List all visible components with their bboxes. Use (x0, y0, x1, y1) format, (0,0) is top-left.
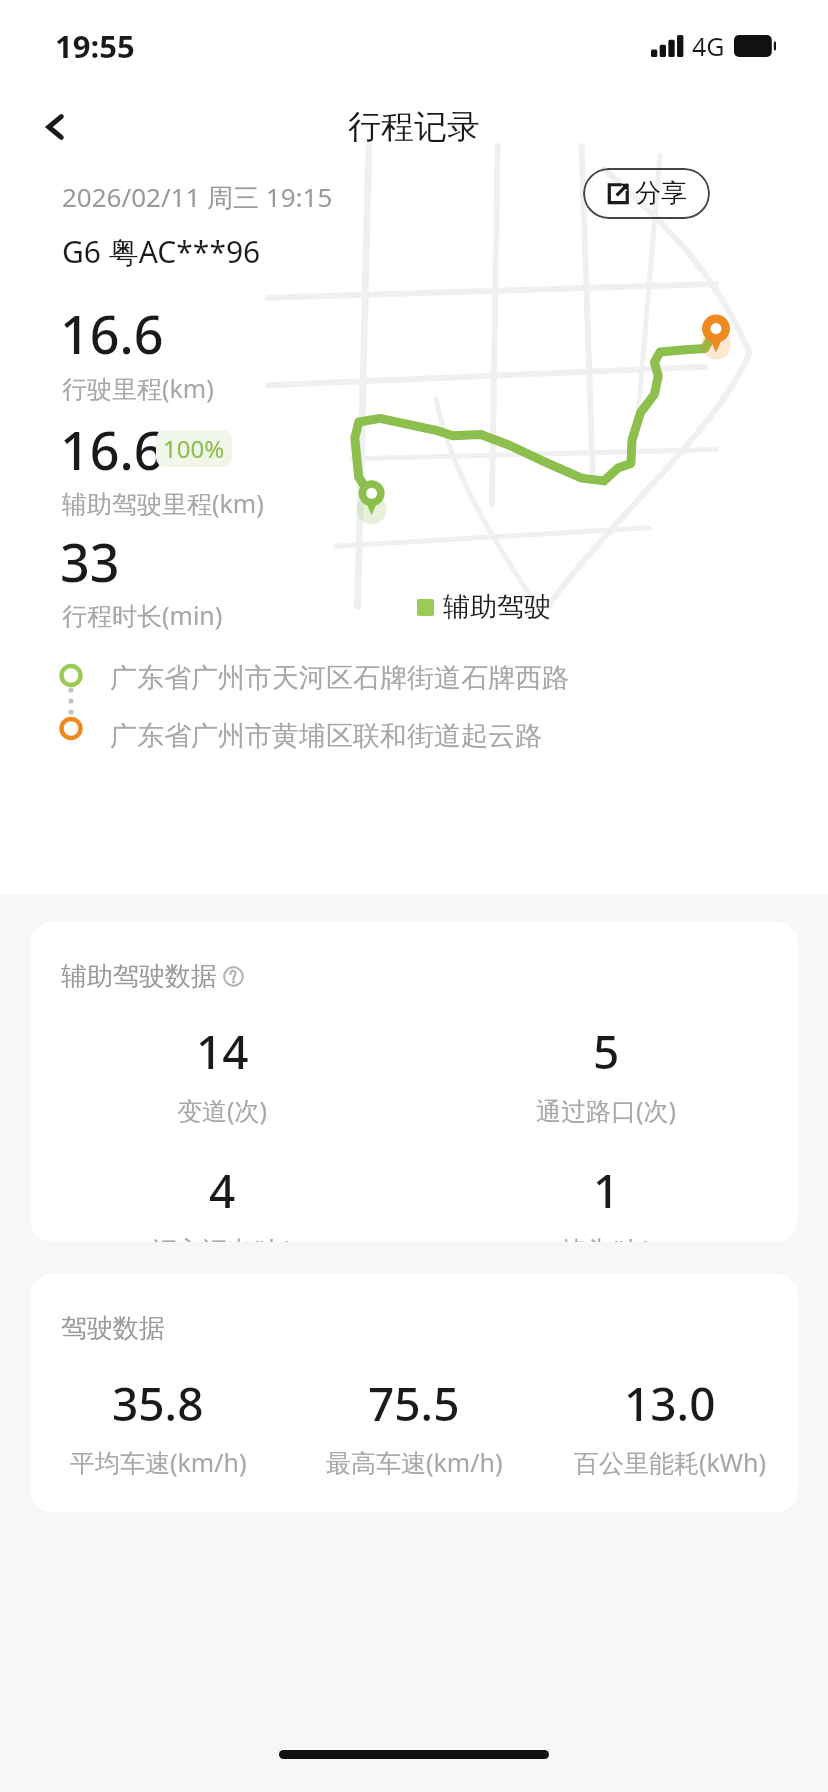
button[interactable]: 75.5 (286, 1372, 542, 1479)
staticText: 分享 (635, 177, 687, 210)
staticText: 行程时长(min) (62, 598, 223, 632)
staticText: 广东省广州市天河区石牌街道石牌西路 (110, 661, 569, 695)
staticText: 辅助驾驶 (443, 590, 551, 624)
staticText: 33 (60, 526, 120, 597)
staticText: 1 (593, 1159, 620, 1222)
staticText: 最高车速(km/h) (326, 1445, 503, 1479)
staticText: 行驶里程(km) (62, 371, 214, 405)
staticText: 掉头(次) (561, 1232, 652, 1242)
staticText: 通过路口(次) (536, 1093, 677, 1127)
staticText: 19:55 (55, 25, 135, 67)
button[interactable]: 5 (414, 1020, 798, 1127)
staticText: 辅助驾驶数据 (61, 960, 217, 993)
staticText: 13.0 (624, 1372, 716, 1435)
button[interactable]: 14 (30, 1020, 414, 1127)
staticText: 广东省广州市黄埔区联和街道起云路 (110, 719, 542, 753)
staticText: 驾驶数据 (61, 1312, 165, 1345)
staticText: 35.8 (112, 1372, 204, 1435)
staticText: 16.6 (60, 414, 164, 485)
button[interactable]: 4 (30, 1159, 414, 1242)
staticText: 汇入汇出(次) (152, 1232, 293, 1242)
staticText: G6 粤AC***96 (62, 231, 261, 272)
staticText: 100% (163, 432, 225, 465)
button[interactable]: 分享 (583, 168, 710, 219)
staticText: 百公里能耗(kWh) (574, 1445, 767, 1479)
staticText: 2026/02/11 周三 19:15 (62, 179, 333, 215)
button[interactable]: Back (26, 97, 86, 157)
staticText: 16.6 (60, 298, 164, 369)
staticText: 75.5 (368, 1372, 460, 1435)
button[interactable]: 13.0 (542, 1372, 798, 1479)
staticText: 平均车速(km/h) (70, 1445, 247, 1479)
staticText: 辅助驾驶里程(km) (62, 486, 264, 520)
staticText: 14 (196, 1020, 249, 1083)
button[interactable]: 35.8 (30, 1372, 286, 1479)
staticText: 5 (593, 1020, 620, 1083)
staticText: 变道(次) (177, 1093, 268, 1127)
staticText: 4G (692, 29, 725, 63)
staticText: 4 (209, 1159, 236, 1222)
button[interactable]: 1 (414, 1159, 798, 1242)
staticText: 行程记录 (348, 106, 480, 148)
